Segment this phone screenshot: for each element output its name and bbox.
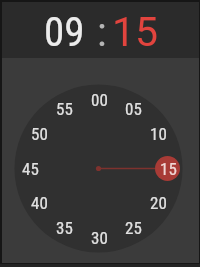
button[interactable]: 25: [118, 217, 148, 239]
staticText: 35: [56, 218, 73, 238]
staticText: 10: [150, 124, 167, 144]
button[interactable]: 35: [49, 217, 79, 239]
button[interactable]: 09: [44, 8, 85, 56]
staticText: :: [97, 8, 107, 56]
staticText: 45: [22, 159, 39, 179]
staticText: 15: [160, 159, 177, 179]
staticText: 00: [91, 90, 108, 110]
button[interactable]: 40: [24, 192, 54, 214]
button[interactable]: 00: [84, 89, 114, 111]
button[interactable]: 30: [84, 227, 114, 249]
staticText: 09: [44, 8, 85, 56]
button[interactable]: 10: [143, 123, 173, 145]
staticText: 15: [112, 8, 159, 56]
button[interactable]: 05: [118, 98, 148, 120]
staticText: 30: [91, 228, 108, 248]
staticText: 20: [150, 193, 167, 213]
staticText: 55: [56, 99, 73, 119]
staticText: 05: [125, 99, 142, 119]
button[interactable]: 45: [15, 158, 45, 180]
button[interactable]: 15: [112, 8, 159, 56]
button[interactable]: 55: [49, 98, 79, 120]
button[interactable]: 15: [153, 158, 183, 180]
staticText: 50: [31, 124, 48, 144]
staticText: 25: [125, 218, 142, 238]
button[interactable]: 50: [24, 123, 54, 145]
button[interactable]: 20: [143, 192, 173, 214]
staticText: 40: [31, 193, 48, 213]
